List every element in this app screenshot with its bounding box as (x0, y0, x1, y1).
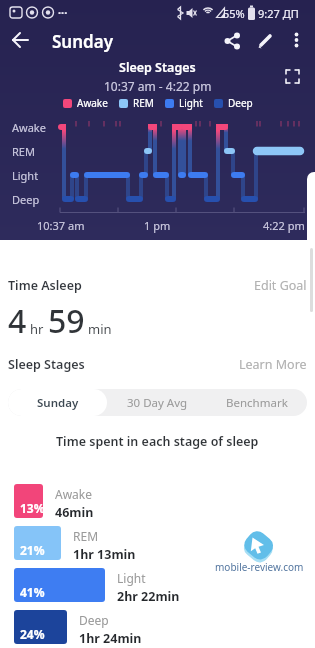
staticText: 1hr 13min (73, 546, 136, 563)
staticText: 55% (223, 6, 245, 21)
staticText: 1hr 24min (79, 630, 142, 647)
staticText: 10:37 am (37, 218, 85, 233)
staticText: Sunday (52, 30, 113, 53)
staticText: Benchmark (226, 395, 288, 411)
staticText: Time spent in each stage of sleep (56, 433, 259, 450)
staticText: Light (117, 570, 146, 586)
button[interactable]: 30 Day Avg (107, 389, 207, 416)
button[interactable] (284, 26, 312, 54)
staticText: 4 (8, 299, 27, 343)
staticText: min (88, 320, 112, 338)
staticText: REM (12, 144, 35, 159)
staticText: 9:27 ДП (258, 6, 299, 21)
button[interactable]: Sunday (8, 389, 107, 416)
button[interactable]: Benchmark (207, 389, 307, 416)
button[interactable] (218, 26, 248, 56)
staticText: 2hr 22min (117, 588, 180, 605)
staticText: 10:37 am - 4:22 pm (104, 78, 212, 94)
staticText: Deep (228, 96, 253, 110)
staticText: 24% (20, 626, 45, 642)
button[interactable]: Edit Goal (254, 277, 307, 294)
staticText: Sleep Stages (119, 59, 196, 76)
staticText: 30 Day Avg (127, 395, 188, 411)
staticText: Sunday (37, 395, 79, 411)
staticText: 41% (20, 584, 45, 600)
staticText: Light (179, 96, 203, 110)
button[interactable] (6, 26, 38, 58)
staticText: Deep (12, 192, 40, 207)
staticText: REM (133, 96, 154, 110)
staticText: Sleep Stages (8, 356, 85, 373)
staticText: 46min (55, 504, 94, 521)
staticText: Awake (77, 96, 108, 110)
staticText: 21% (20, 542, 45, 558)
button[interactable]: Learn More (239, 356, 307, 373)
staticText: mobile-review.com (215, 560, 304, 574)
button[interactable] (251, 26, 281, 56)
staticText: 13% (20, 500, 43, 516)
staticText: Awake (55, 486, 93, 502)
staticText: Time Asleep (8, 277, 82, 294)
button[interactable] (280, 64, 306, 90)
staticText: 59 (48, 299, 85, 343)
staticText: 4:22 pm (263, 218, 305, 233)
staticText: Deep (79, 612, 109, 628)
staticText: Awake (12, 120, 46, 135)
staticText: REM (73, 528, 99, 544)
staticText: Light (12, 168, 39, 183)
staticText: 1 pm (144, 218, 171, 233)
staticText: ... (58, 2, 68, 17)
staticText: hr (30, 320, 44, 338)
